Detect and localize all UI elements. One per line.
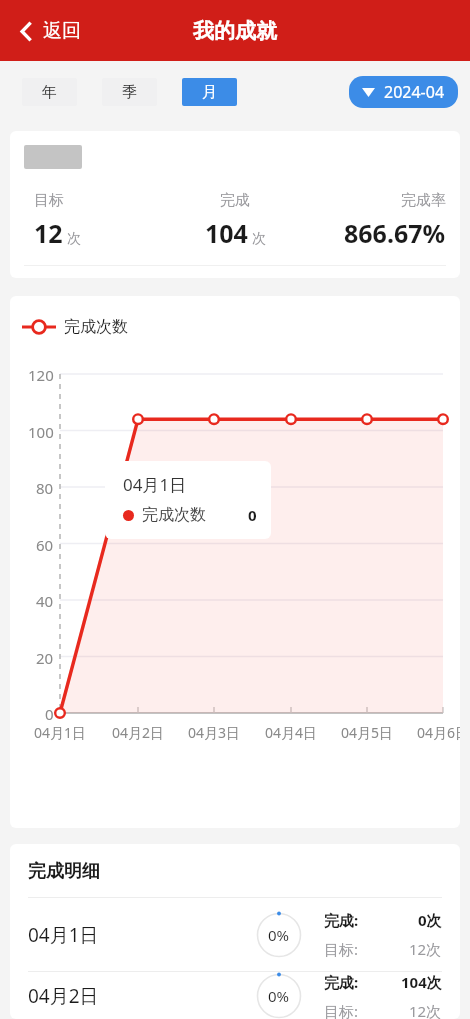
staticText: 目标	[34, 191, 64, 210]
staticText: 104次	[401, 972, 442, 992]
staticText: 0	[45, 704, 54, 724]
button[interactable]: 年	[22, 78, 77, 106]
staticText: 04月5日	[341, 723, 394, 742]
staticText: 完成明细	[28, 860, 100, 883]
staticText: 完成	[220, 191, 250, 210]
staticText: 完成率	[401, 191, 446, 210]
staticText: 04月2日	[28, 983, 99, 1009]
button[interactable]: 季	[102, 78, 157, 106]
button[interactable]: 04月2日	[10, 972, 460, 1019]
staticText: 年	[42, 83, 57, 102]
staticText: 120	[28, 365, 54, 385]
staticText: 20	[36, 648, 54, 668]
staticText: 次	[252, 230, 266, 248]
staticText: 60	[36, 535, 54, 555]
staticText: 月	[202, 83, 217, 102]
staticText: 866.67%	[344, 216, 446, 250]
button[interactable]: 2024-04	[349, 76, 458, 108]
staticText: 04月6日	[417, 723, 460, 742]
staticText: 04月3日	[188, 723, 241, 742]
staticText: 04月2日	[112, 723, 165, 742]
staticText: 04月1日	[34, 723, 87, 742]
staticText: 我的成就	[193, 18, 277, 44]
staticText: 目标:	[324, 939, 359, 959]
staticText: 完成次数	[64, 317, 128, 337]
staticText: 04月1日	[28, 922, 99, 948]
button[interactable]: 04月1日	[10, 898, 460, 971]
staticText: 12次	[409, 1001, 442, 1019]
staticText: 100	[28, 422, 54, 442]
staticText: 完成次数	[142, 505, 206, 525]
staticText: 季	[122, 83, 137, 102]
staticText: 0%	[268, 925, 290, 945]
staticText: 次	[67, 230, 81, 248]
staticText: 完成:	[324, 910, 359, 930]
staticText: 12次	[409, 939, 442, 959]
staticText: 完成:	[324, 972, 359, 992]
staticText: 目标:	[324, 1001, 359, 1019]
staticText: 返回	[43, 19, 81, 43]
staticText: 0	[248, 505, 257, 525]
staticText: 04月1日	[123, 473, 187, 496]
button[interactable]: Back	[14, 11, 87, 51]
staticText: 0次	[418, 910, 442, 930]
button[interactable]: 月	[182, 78, 237, 106]
staticText: 2024-04	[384, 81, 445, 103]
staticText: 104	[205, 216, 248, 250]
staticText: 04月4日	[265, 723, 318, 742]
other: Back	[20, 21, 33, 42]
staticText: 80	[36, 478, 54, 498]
staticText: 12	[34, 216, 63, 250]
button[interactable]: 目标	[10, 131, 460, 278]
staticText: 40	[36, 591, 54, 611]
staticText: 0%	[268, 986, 290, 1006]
